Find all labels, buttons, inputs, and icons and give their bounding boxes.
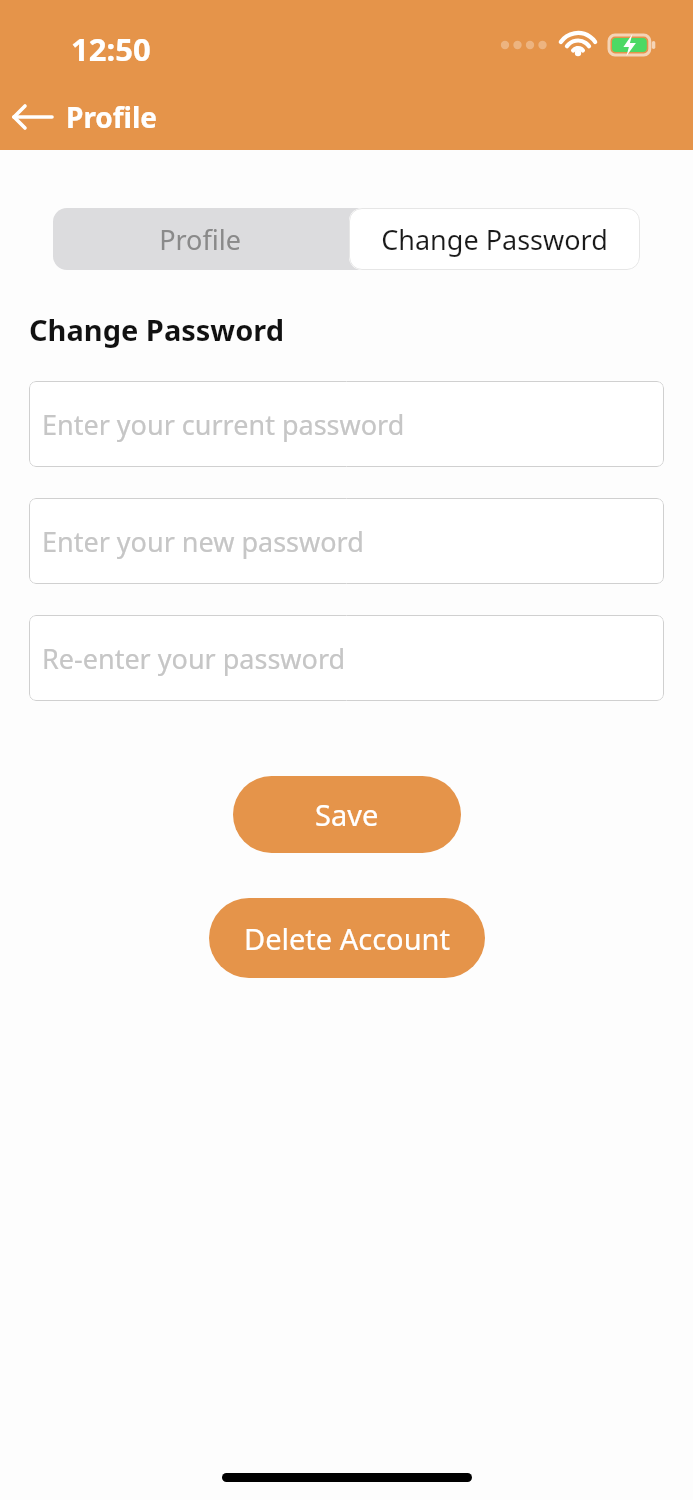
staticText: Re-enter your password bbox=[42, 640, 346, 677]
staticText: Profile bbox=[66, 98, 158, 136]
button[interactable]: Enter your new password bbox=[29, 498, 664, 584]
staticText: Profile bbox=[159, 221, 241, 258]
staticText: Change Password bbox=[29, 310, 285, 349]
staticText: Delete Account bbox=[244, 919, 450, 958]
button[interactable]: Re-enter your password bbox=[29, 615, 664, 701]
staticText: Enter your current password bbox=[42, 406, 405, 443]
staticText: Enter your new password bbox=[42, 523, 364, 560]
staticText: 12:50 bbox=[71, 28, 151, 70]
button[interactable]: Back bbox=[0, 92, 66, 142]
staticText: Save bbox=[315, 795, 379, 834]
button[interactable]: Change Password bbox=[349, 208, 640, 270]
button[interactable]: Save bbox=[233, 776, 461, 853]
button[interactable]: Enter your current password bbox=[29, 381, 664, 467]
button[interactable]: Profile bbox=[53, 208, 347, 270]
button[interactable]: Delete Account bbox=[209, 898, 485, 978]
staticText: Change Password bbox=[381, 221, 608, 258]
